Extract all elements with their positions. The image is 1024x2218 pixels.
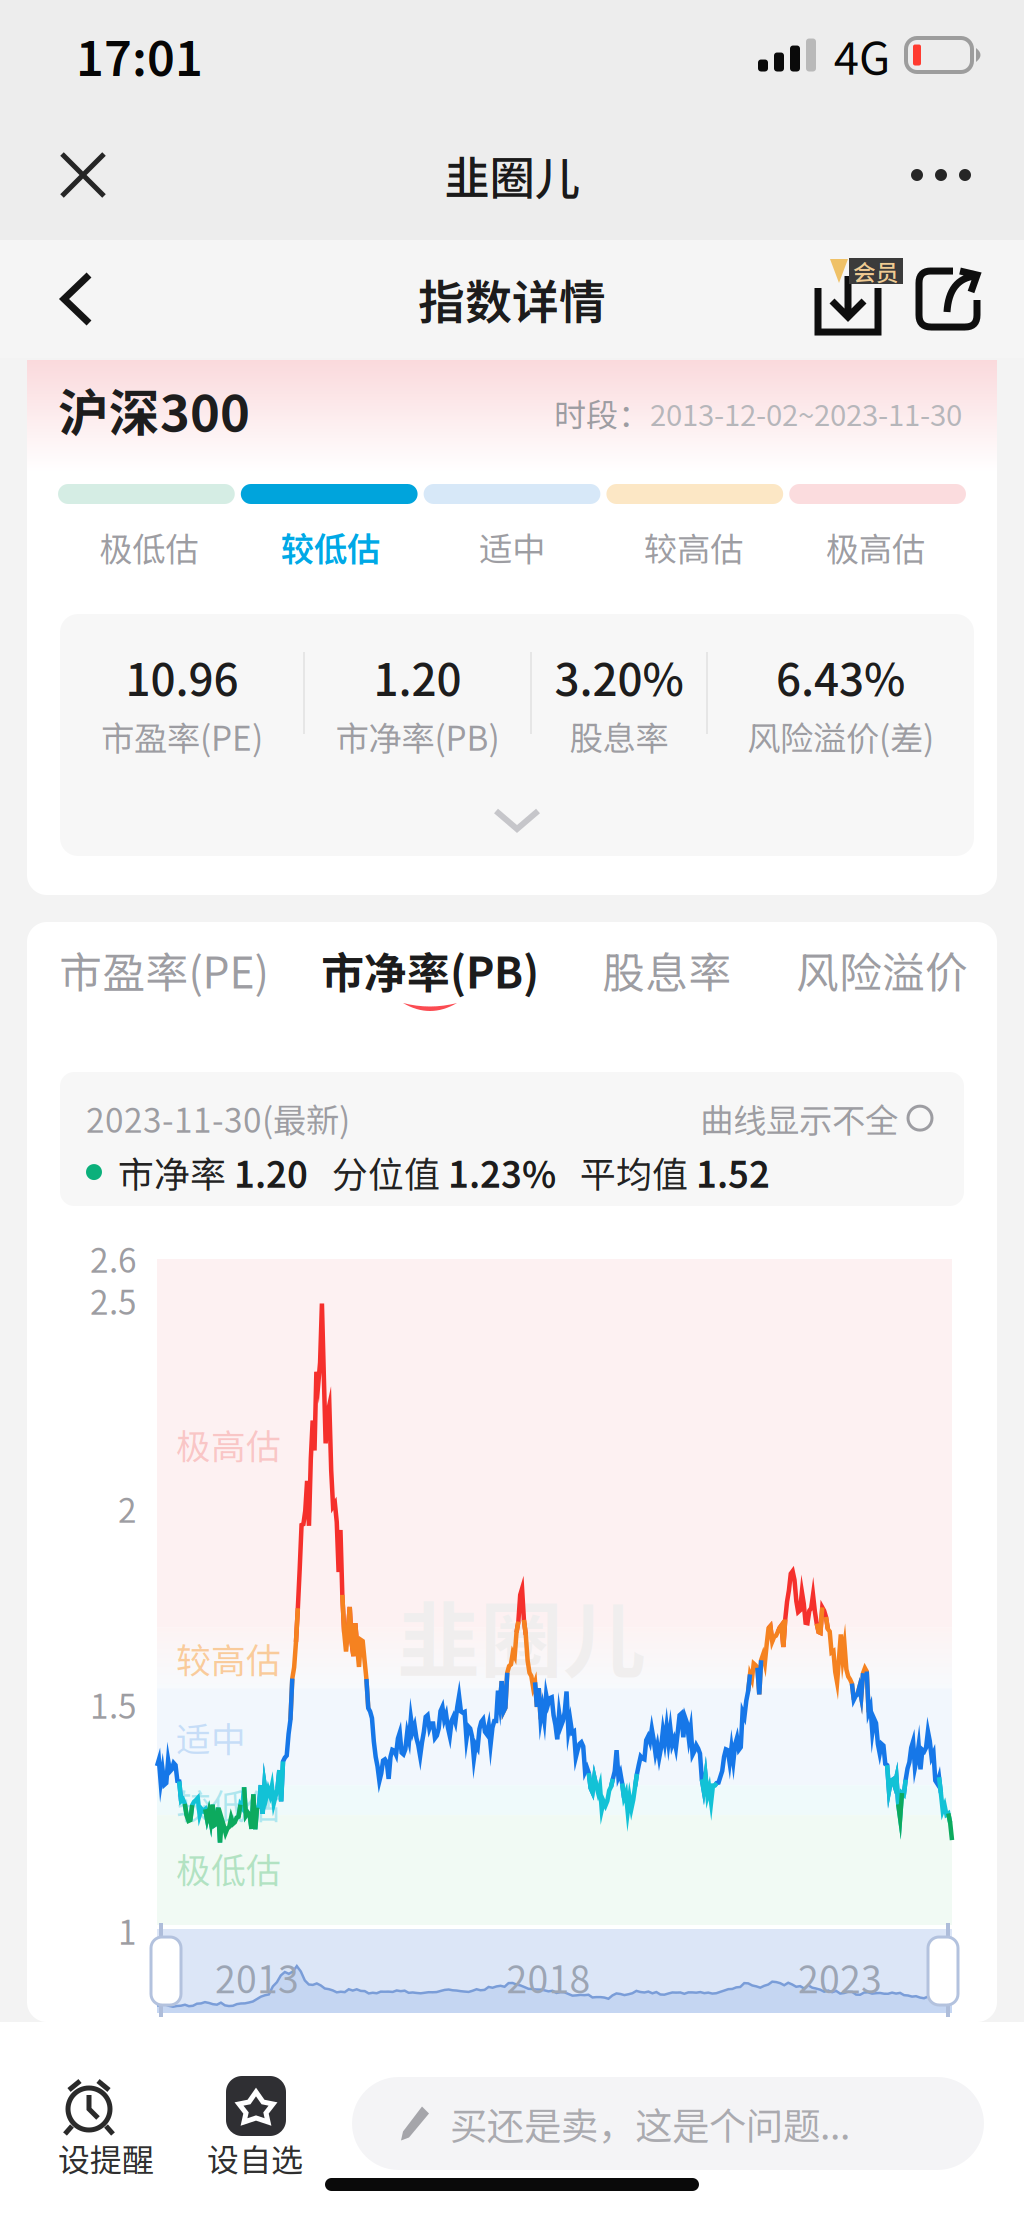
staticText: 指数详情 (418, 265, 606, 333)
button[interactable]: 市净率(PB) (322, 940, 538, 1020)
staticText: 1 (118, 1906, 137, 1954)
staticText: 沪深300 (58, 373, 250, 446)
button[interactable]: 展开更多指标 (437, 790, 597, 850)
staticText: 较低估 (281, 523, 380, 571)
staticText: 1.20 (234, 1146, 308, 1198)
staticText: 市净率(PB) (335, 712, 499, 760)
staticText: 平均值 (556, 1146, 696, 1198)
staticText: 10.96 (125, 645, 238, 709)
staticText: 市净率(PB) (321, 939, 539, 1001)
staticText: 2.5 (90, 1276, 137, 1324)
staticText: 分位值 (308, 1146, 448, 1198)
staticText: 2 (118, 1484, 137, 1532)
staticText: 3.20% (554, 645, 683, 709)
staticText: 市净率 (118, 1146, 234, 1198)
button[interactable]: 股息率 (604, 940, 730, 1020)
staticText: 2023-11-30(最新) (86, 1094, 350, 1142)
staticText: 1.52 (696, 1146, 770, 1198)
staticText: 适中 (176, 1712, 246, 1762)
button[interactable]: 风险溢价 (802, 940, 962, 1020)
staticText: 会员 (853, 255, 899, 287)
staticText: 韭圈儿 (397, 1575, 646, 1695)
staticText: 买还是卖，这是个问题... (450, 2096, 850, 2151)
staticText: 时段： (554, 390, 650, 436)
staticText: 1.20 (373, 645, 461, 709)
staticText: 极低估 (176, 1843, 281, 1893)
staticText: 较低估 (176, 1779, 281, 1829)
staticText: 极低估 (99, 523, 198, 571)
button[interactable]: 下载 (794, 249, 898, 349)
staticText: 17:01 (76, 20, 203, 90)
staticText: 极高估 (176, 1419, 281, 1469)
staticText: 6.43% (776, 645, 905, 709)
staticText: 设自选 (207, 2135, 303, 2181)
button[interactable]: 市盈率(PE) (61, 940, 267, 1020)
staticText: 风险溢价 (796, 939, 968, 1001)
staticText: 设提醒 (58, 2135, 154, 2181)
button[interactable]: 设自选 (190, 2022, 320, 2182)
button[interactable]: 更多 (886, 125, 996, 225)
staticText: 2023 (798, 1950, 882, 2004)
staticText: 股息率 (602, 939, 731, 1001)
staticText: 市盈率(PE) (101, 712, 263, 760)
staticText: 1.23% (448, 1146, 556, 1198)
staticText: 1.5 (90, 1680, 137, 1728)
button[interactable]: 分享 (898, 249, 998, 349)
staticText: 股息率 (569, 712, 668, 760)
staticText: 较高估 (176, 1633, 281, 1683)
staticText: 曲线显示不全 (700, 1094, 898, 1142)
staticText: 风险溢价(差) (747, 712, 934, 760)
staticText: 2018 (506, 1950, 590, 2004)
button[interactable]: 设提醒 (41, 2022, 171, 2182)
staticText: 极高估 (826, 523, 925, 571)
button[interactable]: 关闭 (28, 125, 138, 225)
staticText: 市盈率(PE) (59, 939, 268, 1001)
button[interactable]: 买还是卖，这是个问题... (352, 2077, 984, 2170)
staticText: 2013 (215, 1950, 299, 2004)
staticText: 较高估 (644, 523, 743, 571)
staticText: 适中 (479, 523, 545, 571)
staticText: 2013-12-02~2023-11-30 (650, 392, 962, 434)
staticText: 韭圈儿 (444, 142, 579, 208)
button[interactable]: 返回 (26, 249, 126, 349)
staticText: 2.6 (90, 1234, 137, 1282)
staticText: 4G (834, 22, 890, 88)
